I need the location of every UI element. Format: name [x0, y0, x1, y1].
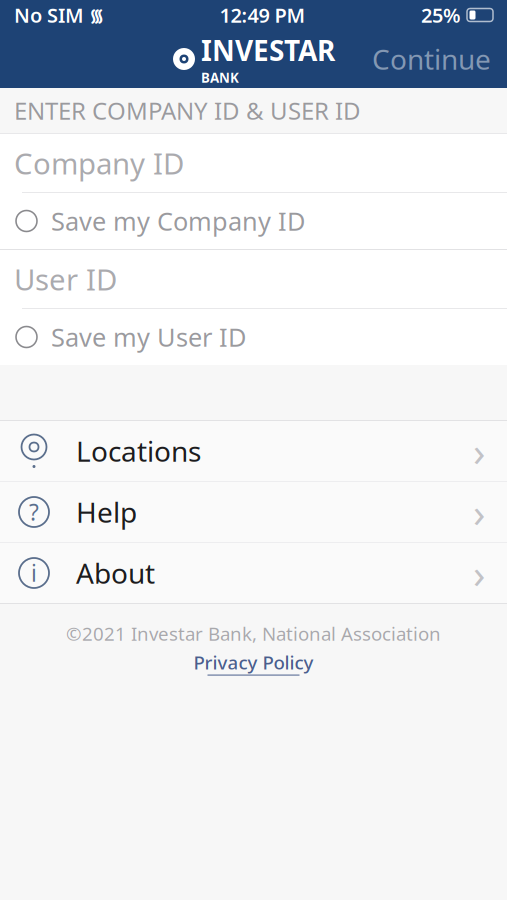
staticText: 12:49 PM	[219, 2, 305, 28]
staticText: ›	[473, 424, 485, 477]
button[interactable]: Save my Company ID	[0, 193, 507, 249]
staticText: ENTER COMPANY ID & USER ID	[14, 95, 361, 126]
staticText: Help	[76, 493, 137, 531]
staticText: No SIM	[14, 2, 84, 28]
staticText: Save my Company ID	[51, 204, 305, 238]
staticText: ᯾	[84, 3, 104, 26]
staticText: Save my User ID	[51, 320, 246, 354]
staticText: ?	[29, 497, 39, 527]
staticText: Privacy Policy	[193, 650, 313, 675]
button[interactable]: Company ID	[0, 134, 507, 193]
staticText: INVESTAR	[201, 32, 335, 69]
button[interactable]: Save my User ID	[0, 309, 507, 365]
button[interactable]: i	[0, 543, 507, 604]
button[interactable]: User ID	[0, 250, 507, 309]
button[interactable]: Locations	[0, 421, 507, 482]
staticText: ›	[473, 546, 485, 599]
staticText: Continue	[372, 40, 491, 78]
button[interactable]: ?	[0, 482, 507, 543]
staticText: Company ID	[14, 143, 184, 182]
staticText: Locations	[76, 432, 201, 470]
staticText: 25%	[421, 2, 461, 28]
staticText: ›	[473, 485, 485, 538]
staticText: About	[76, 554, 155, 592]
staticText: i	[31, 558, 37, 588]
button[interactable]: Continue	[356, 32, 507, 86]
staticText: ©2021 Investar Bank, National Associatio…	[66, 621, 441, 646]
staticText: BANK	[201, 69, 239, 86]
staticText: User ID	[14, 259, 117, 298]
button[interactable]: Privacy Policy	[187, 648, 319, 678]
